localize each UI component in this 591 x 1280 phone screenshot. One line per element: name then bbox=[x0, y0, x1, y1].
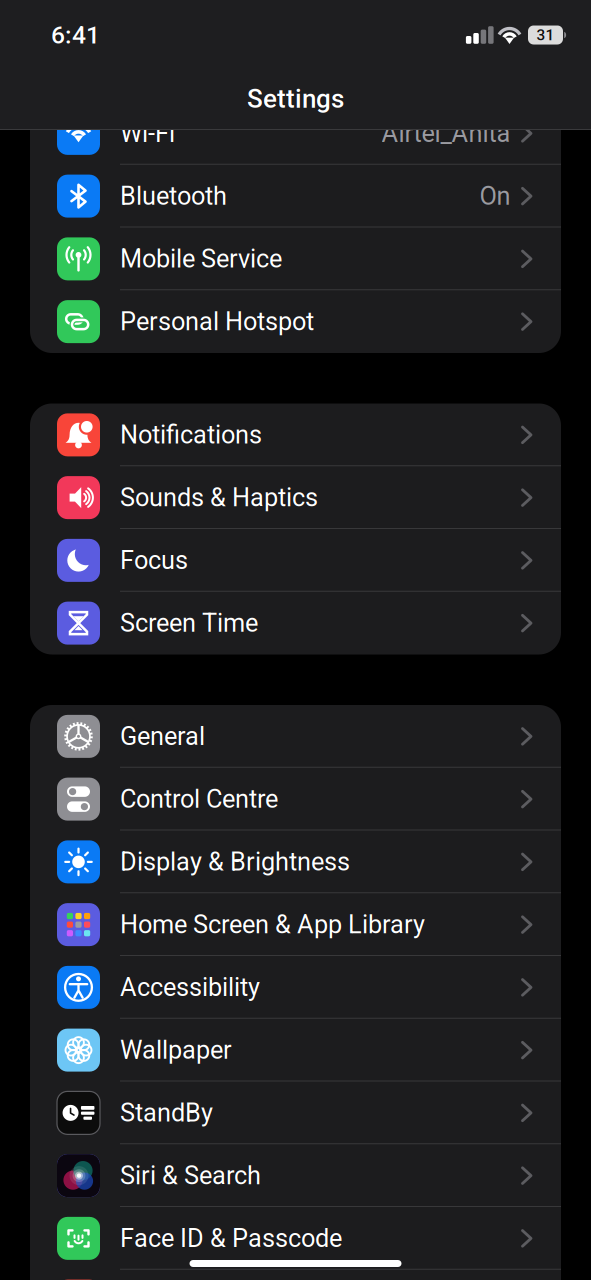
button[interactable]: Siri & Search bbox=[30, 1144, 561, 1207]
button[interactable]: Notifications bbox=[30, 403, 561, 466]
staticText: Wallpaper bbox=[120, 1035, 232, 1065]
button[interactable]: Screen Time bbox=[30, 592, 561, 655]
staticText: Accessibility bbox=[120, 972, 260, 1002]
staticText: On bbox=[479, 181, 510, 211]
staticText: Siri & Search bbox=[120, 1161, 261, 1190]
staticText: Airtel_Anita bbox=[381, 118, 510, 148]
button[interactable]: Mobile Service bbox=[30, 227, 561, 290]
button[interactable]: Emergency SOS bbox=[30, 1270, 561, 1280]
staticText: Home Screen & App Library bbox=[120, 910, 425, 939]
staticText: Display & Brightness bbox=[120, 847, 350, 877]
button[interactable]: Focus bbox=[30, 529, 561, 592]
button[interactable]: General bbox=[30, 705, 561, 768]
button[interactable]: Display & Brightness bbox=[30, 830, 561, 893]
button[interactable]: Accessibility bbox=[30, 956, 561, 1019]
staticText: Face ID & Passcode bbox=[120, 1223, 342, 1253]
staticText: Mobile Service bbox=[120, 244, 282, 274]
staticText: General bbox=[120, 721, 205, 751]
staticText: Settings bbox=[247, 83, 344, 114]
staticText: StandBy bbox=[120, 1098, 213, 1128]
button[interactable]: Face ID & Passcode bbox=[30, 1207, 561, 1270]
staticText: 6:41 bbox=[51, 20, 100, 49]
staticText: Screen Time bbox=[120, 608, 258, 638]
staticText: Control Centre bbox=[120, 784, 278, 814]
staticText: Bluetooth bbox=[120, 181, 227, 211]
button[interactable]: Personal Hotspot bbox=[30, 290, 561, 353]
button[interactable]: Control Centre bbox=[30, 768, 561, 831]
button[interactable]: Bluetooth bbox=[30, 165, 561, 228]
button[interactable]: Wi-Fi bbox=[30, 102, 561, 165]
button[interactable]: StandBy bbox=[30, 1081, 561, 1144]
staticText: Personal Hotspot bbox=[120, 307, 314, 336]
staticText: 31 bbox=[536, 26, 554, 44]
button[interactable]: Sounds & Haptics bbox=[30, 466, 561, 529]
button[interactable]: Home Screen & App Library bbox=[30, 893, 561, 956]
staticText: Wi-Fi bbox=[120, 118, 175, 148]
staticText: Sounds & Haptics bbox=[120, 483, 318, 512]
staticText: Notifications bbox=[120, 420, 262, 450]
button[interactable]: Wallpaper bbox=[30, 1019, 561, 1082]
staticText: Focus bbox=[120, 545, 188, 575]
